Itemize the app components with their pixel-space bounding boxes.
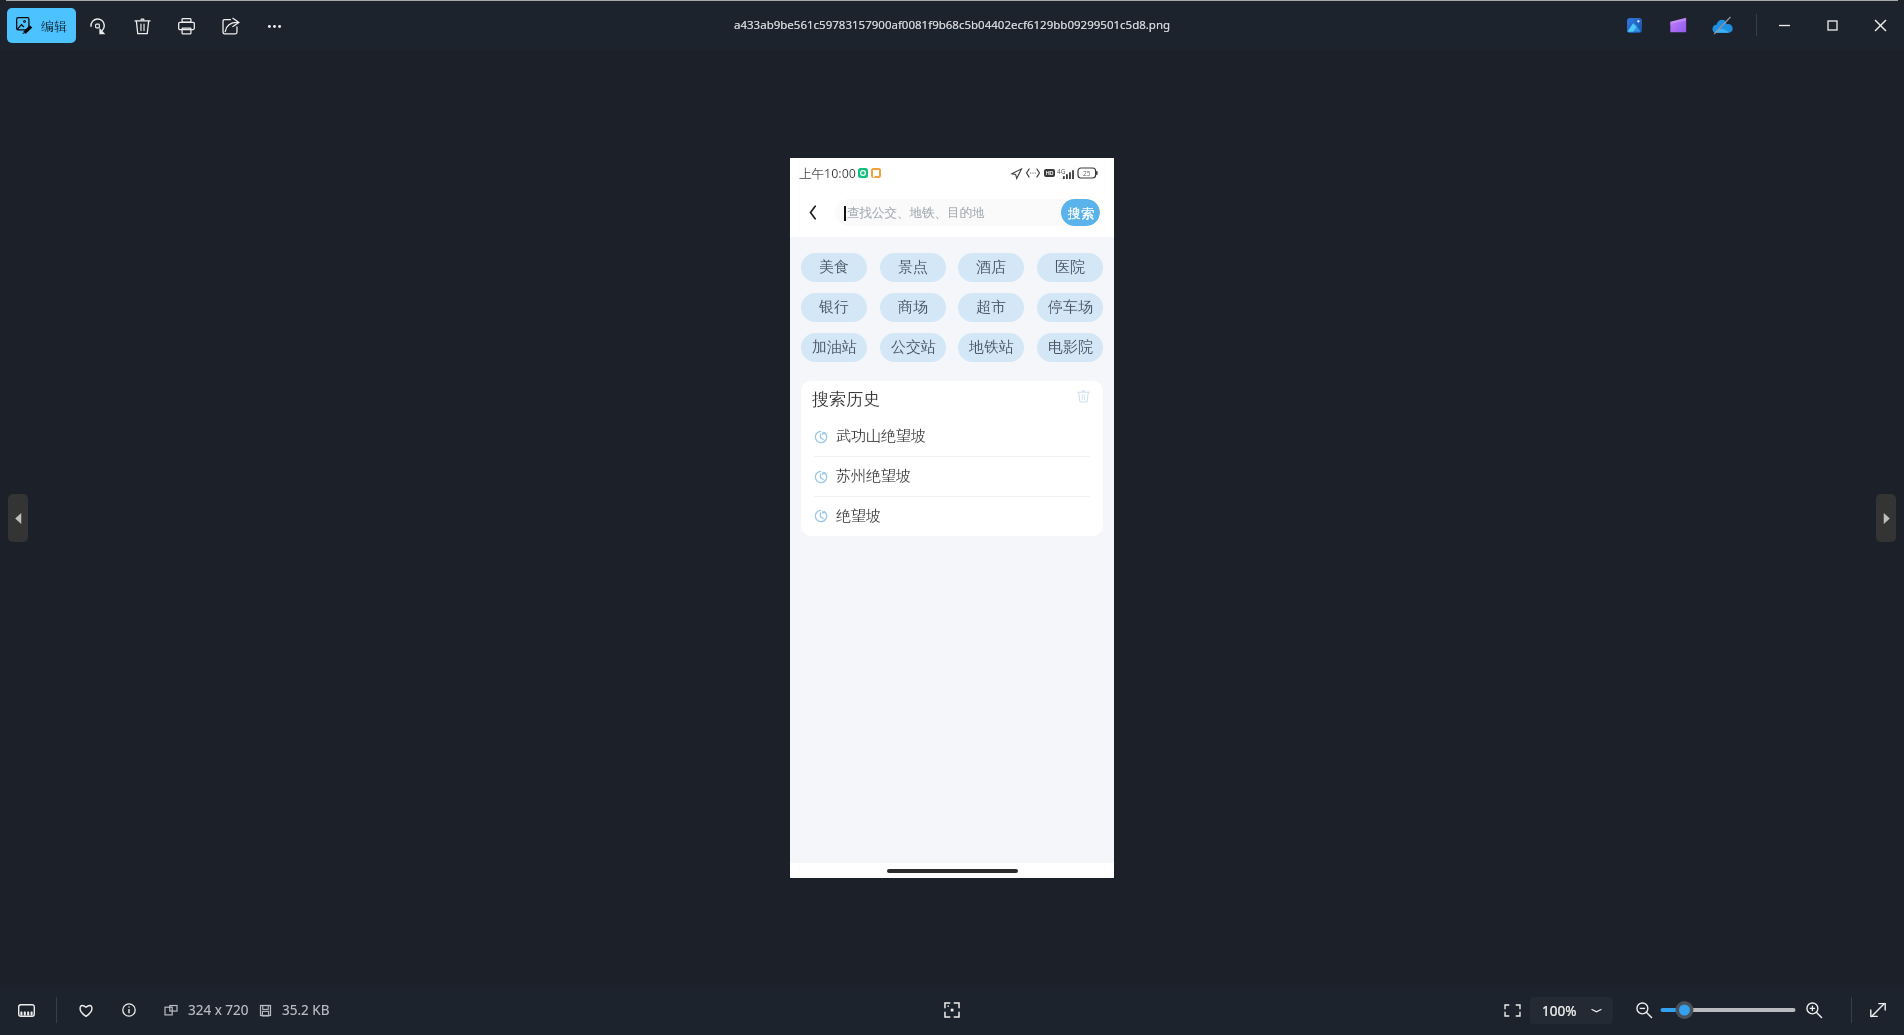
button[interactable]: Delete <box>126 10 158 42</box>
button[interactable]: 美食 <box>801 253 867 282</box>
staticText: 搜索历史 <box>812 389 880 410</box>
staticText: a433ab9be561c59783157900af0081f9b68c5b04… <box>734 17 1171 33</box>
button[interactable]: Minimize <box>1760 3 1808 47</box>
button[interactable]: 100% <box>1530 997 1613 1024</box>
staticText: 美食 <box>819 258 849 277</box>
button[interactable]: Print <box>170 10 202 42</box>
button[interactable]: Cloud off <box>1700 7 1744 43</box>
staticText: 编辑 <box>41 18 67 34</box>
button[interactable]: 酒店 <box>958 253 1024 282</box>
button[interactable]: 加油站 <box>801 333 867 362</box>
button[interactable]: Share <box>214 10 246 42</box>
staticText: 100% <box>1542 1002 1577 1020</box>
staticText: 超市 <box>976 298 1006 317</box>
staticText: 加油站 <box>812 338 857 357</box>
staticText: 银行 <box>819 298 849 317</box>
button[interactable]: 苏州绝望坡 <box>801 457 1103 496</box>
staticText: 酒店 <box>976 258 1006 277</box>
button[interactable]: Info <box>113 994 145 1026</box>
staticText: 苏州绝望坡 <box>836 467 911 486</box>
button[interactable]: Clear history <box>1072 385 1094 407</box>
button[interactable]: Filmstrip <box>10 994 42 1026</box>
button[interactable]: Zoom out <box>1632 998 1656 1022</box>
button[interactable]: Full screen <box>1864 996 1892 1024</box>
staticText: HD <box>1046 170 1054 177</box>
staticText: 公交站 <box>891 338 936 357</box>
button[interactable]: Next <box>1876 494 1896 542</box>
button[interactable]: 搜索 <box>1061 199 1100 226</box>
button[interactable]: Fit to window <box>1497 995 1527 1025</box>
staticText: 324 x 720 <box>188 1001 249 1019</box>
button[interactable]: 医院 <box>1037 253 1103 282</box>
button[interactable]: Maximize <box>1808 3 1856 47</box>
button[interactable]: 超市 <box>958 293 1024 322</box>
staticText: 上午10:00 <box>799 165 856 182</box>
button[interactable]: Photos <box>1612 7 1656 43</box>
button[interactable]: Back <box>790 188 835 237</box>
button[interactable]: Scan <box>936 994 968 1026</box>
button[interactable]: 绝望坡 <box>801 497 1103 535</box>
staticText: 25 <box>1083 169 1091 178</box>
button[interactable]: 电影院 <box>1037 333 1103 362</box>
button[interactable]: 武功山绝望坡 <box>801 417 1103 456</box>
button[interactable]: 地铁站 <box>958 333 1024 362</box>
staticText: 商场 <box>898 298 928 317</box>
staticText: 景点 <box>898 258 928 277</box>
button[interactable]: Previous <box>8 494 28 542</box>
button[interactable]: Close <box>1856 3 1904 47</box>
button[interactable]: 公交站 <box>880 333 946 362</box>
button[interactable]: 商场 <box>880 293 946 322</box>
staticText: 停车场 <box>1048 298 1093 317</box>
button[interactable]: More <box>258 10 290 42</box>
staticText: 搜索 <box>1068 205 1094 221</box>
button[interactable]: 停车场 <box>1037 293 1103 322</box>
staticText: 查找公交、地铁、目的地 <box>847 205 985 221</box>
button[interactable]: 银行 <box>801 293 867 322</box>
staticText: 医院 <box>1055 258 1085 277</box>
button[interactable]: 编辑 <box>7 8 76 43</box>
button[interactable]: Zoom in <box>1802 998 1826 1022</box>
button[interactable]: Favorite <box>70 994 102 1026</box>
button[interactable]: Rotate <box>82 10 114 42</box>
staticText: 绝望坡 <box>836 507 881 526</box>
button[interactable]: 查找公交、地铁、目的地 <box>835 199 1100 226</box>
button[interactable]: 景点 <box>880 253 946 282</box>
staticText: 4G <box>1057 167 1066 176</box>
button[interactable]: Video editor <box>1656 7 1700 43</box>
staticText: 35.2 KB <box>282 1001 330 1019</box>
staticText: 地铁站 <box>969 338 1014 357</box>
staticText: 武功山绝望坡 <box>836 427 926 446</box>
staticText: 电影院 <box>1048 338 1093 357</box>
